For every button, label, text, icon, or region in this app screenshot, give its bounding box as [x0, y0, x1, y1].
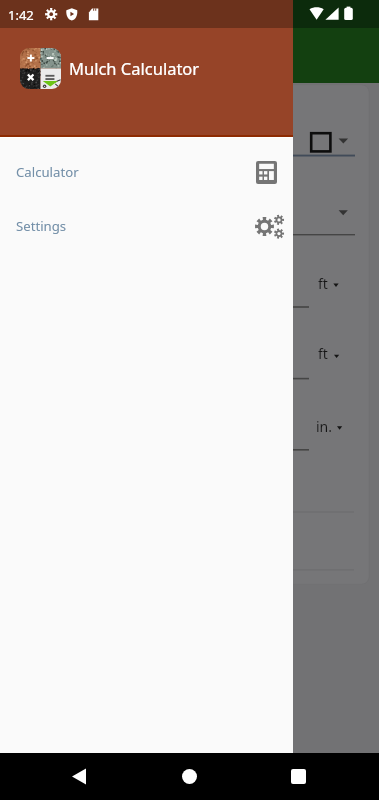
staticText: Calculator — [16, 163, 79, 181]
staticText: Settings — [16, 217, 67, 235]
staticText: Mulch Calculator — [69, 57, 200, 79]
button[interactable]: Calculator — [0, 145, 293, 199]
button[interactable]: Settings — [0, 199, 293, 253]
staticText: ft — [318, 274, 328, 293]
staticText: in. — [316, 417, 333, 436]
staticText: ft — [318, 344, 328, 363]
staticText: 1:42 — [8, 6, 34, 24]
